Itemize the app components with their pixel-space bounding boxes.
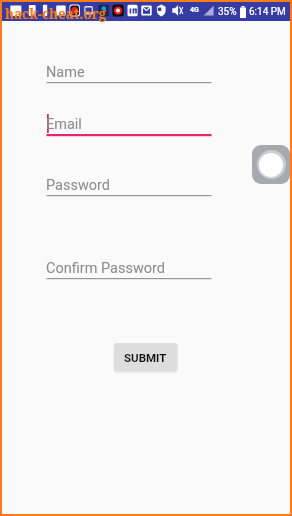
button[interactable]: Password xyxy=(46,174,211,197)
button[interactable]: Email xyxy=(46,113,211,136)
staticText: Password xyxy=(46,177,111,194)
staticText: 35% xyxy=(218,6,237,18)
button[interactable]: Screen recorder xyxy=(252,145,290,184)
staticText: Email xyxy=(46,116,82,133)
staticText: Confirm Password xyxy=(46,260,166,277)
staticText: Name xyxy=(46,64,85,81)
button[interactable]: Name xyxy=(46,61,211,84)
staticText: SUBMIT xyxy=(124,351,167,364)
button[interactable]: SUBMIT xyxy=(114,343,177,371)
staticText: 4G xyxy=(190,6,199,14)
staticText: 6:14 PM xyxy=(249,6,286,18)
staticText: hack-cheat.org xyxy=(5,5,107,23)
button[interactable]: Confirm Password xyxy=(46,257,211,280)
